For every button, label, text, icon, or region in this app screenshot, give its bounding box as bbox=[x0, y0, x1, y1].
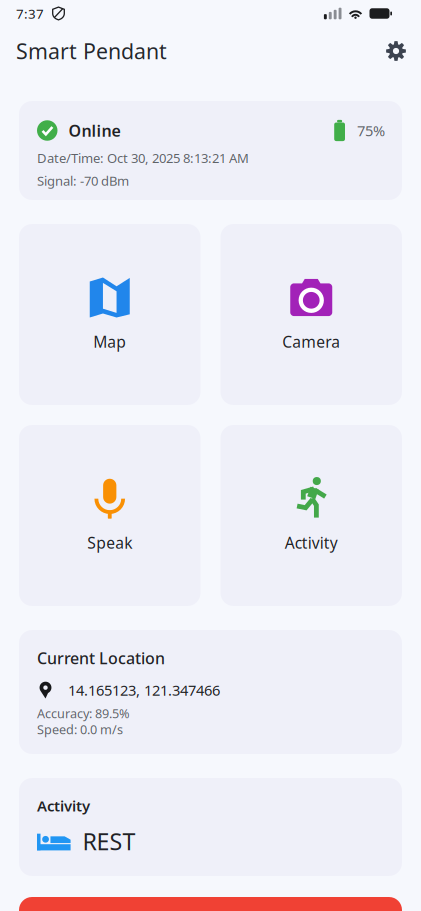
staticText: 7:37 bbox=[16, 5, 44, 22]
staticText: Camera bbox=[282, 331, 340, 352]
button[interactable]: SOS bbox=[19, 897, 402, 911]
button[interactable]: Camera bbox=[220, 224, 402, 405]
staticText: Date/Time: Oct 30, 2025 8:13:21 AM bbox=[37, 149, 249, 167]
staticText: Accuracy: 89.5% bbox=[37, 705, 130, 722]
staticText: Map bbox=[93, 331, 126, 352]
button[interactable]: Activity bbox=[220, 425, 402, 606]
staticText: Current Location bbox=[37, 647, 165, 669]
staticText: Smart Pendant bbox=[16, 37, 167, 65]
staticText: 14.165123, 121.347466 bbox=[68, 680, 220, 700]
staticText: Speed: 0.0 m/s bbox=[37, 721, 123, 738]
button[interactable]: Settings bbox=[376, 31, 416, 71]
staticText: Signal: -70 dBm bbox=[37, 172, 129, 190]
button[interactable]: Map bbox=[19, 224, 200, 405]
button[interactable]: Speak bbox=[19, 425, 200, 606]
staticText: Online bbox=[68, 120, 120, 141]
staticText: Speak bbox=[87, 532, 132, 553]
staticText: Activity bbox=[37, 796, 90, 816]
staticText: 75% bbox=[357, 121, 385, 140]
staticText: Activity bbox=[285, 532, 338, 553]
staticText: REST bbox=[83, 825, 136, 857]
